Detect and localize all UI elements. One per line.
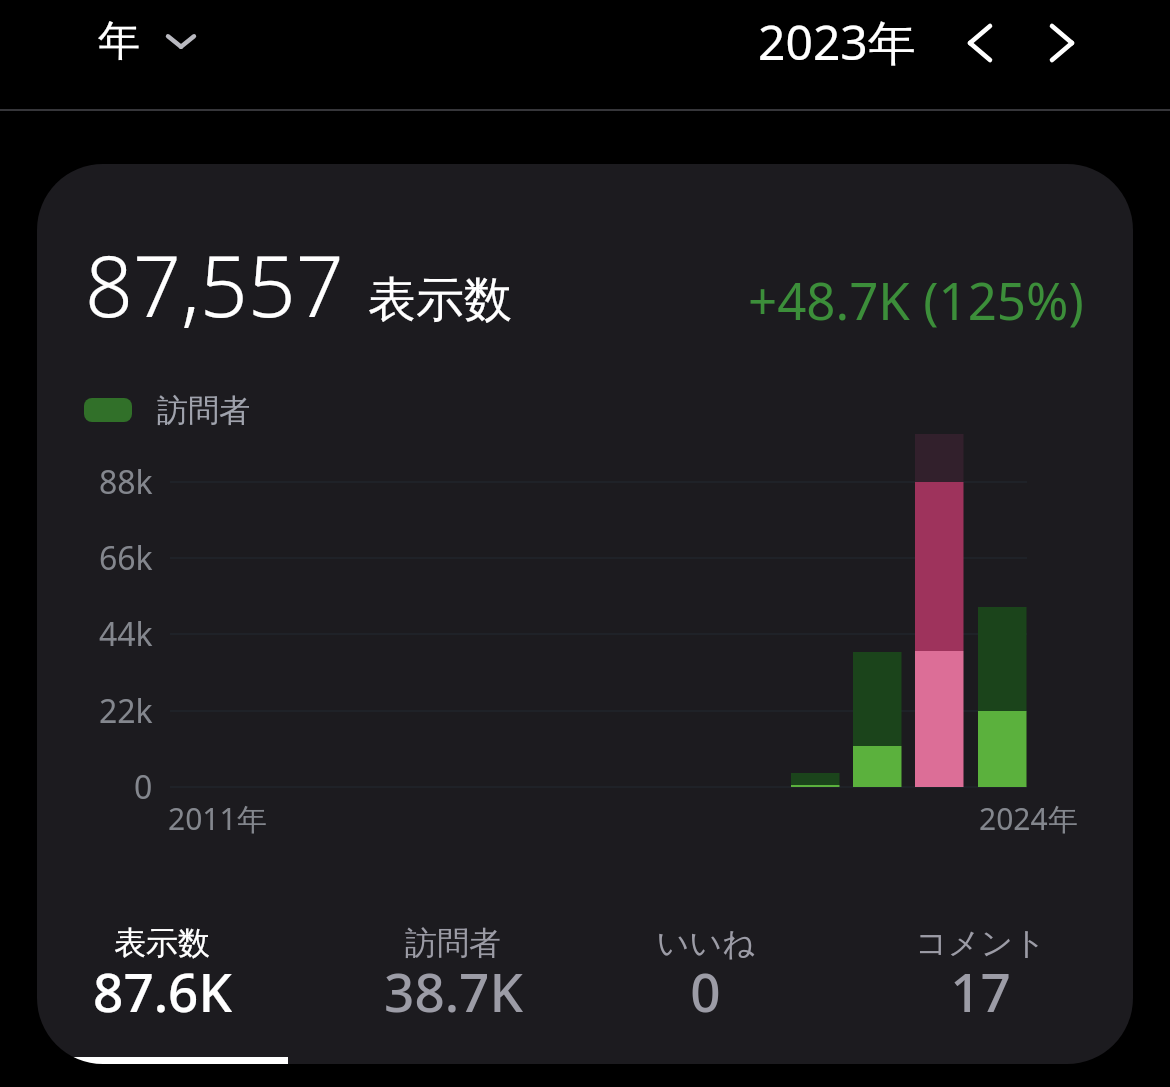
button[interactable]: Previous year xyxy=(946,9,1014,77)
staticText: 2023年 xyxy=(758,9,916,75)
button[interactable]: Visitors bar chart xyxy=(37,164,1133,1064)
staticText: 2011年 xyxy=(168,798,267,839)
button[interactable]: 訪問者 xyxy=(303,920,603,1018)
staticText: 0 xyxy=(134,765,153,809)
staticText: 87.6K xyxy=(93,955,232,1027)
button[interactable]: 年 xyxy=(86,5,206,78)
staticText: コメント xyxy=(915,923,1046,963)
staticText: 66k xyxy=(99,536,153,580)
staticText: 88k xyxy=(99,460,153,504)
staticText: 年 xyxy=(98,15,140,68)
staticText: 2024年 xyxy=(979,798,1078,839)
button[interactable]: いいね xyxy=(555,920,855,1018)
staticText: いいね xyxy=(656,923,755,963)
button[interactable]: コメント xyxy=(830,920,1130,1018)
staticText: 訪問者 xyxy=(405,923,501,963)
staticText: 87,557 xyxy=(85,227,344,341)
staticText: 17 xyxy=(950,955,1011,1027)
button[interactable]: Next year xyxy=(1028,9,1096,77)
button[interactable]: 表示数 xyxy=(37,920,312,1018)
staticText: 22k xyxy=(99,689,153,733)
staticText: 訪問者 xyxy=(157,391,250,430)
staticText: +48.7K (125%) xyxy=(748,265,1084,334)
staticText: 38.7K xyxy=(384,955,523,1027)
staticText: 表示数 xyxy=(114,923,210,963)
staticText: 44k xyxy=(99,612,153,656)
staticText: 0 xyxy=(690,955,721,1027)
staticText: 表示数 xyxy=(368,270,512,330)
